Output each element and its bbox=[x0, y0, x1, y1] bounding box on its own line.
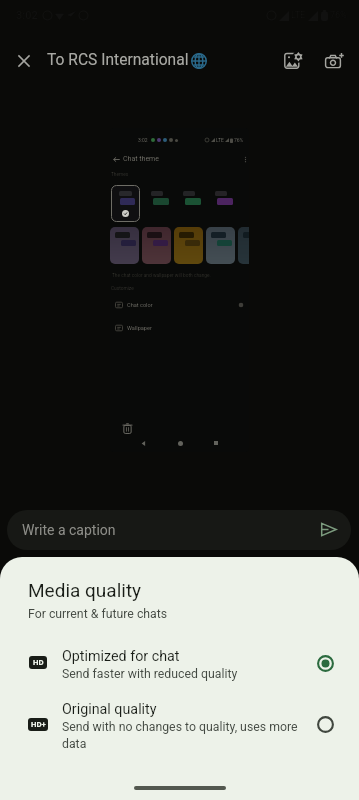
staticText: 76% bbox=[234, 137, 244, 143]
staticText: LTE bbox=[216, 137, 224, 143]
staticText: HD+ bbox=[31, 720, 46, 729]
staticText: The chat color and wallpaper will both c… bbox=[112, 273, 211, 279]
button[interactable]: HD bbox=[0, 641, 359, 688]
staticText: To RCS International bbox=[47, 51, 189, 69]
staticText: Themes bbox=[111, 172, 129, 178]
button[interactable]: Write a caption bbox=[7, 510, 351, 550]
staticText: For current & future chats bbox=[28, 607, 168, 621]
staticText: Original quality bbox=[62, 701, 157, 718]
button[interactable]: Send bbox=[309, 510, 349, 550]
staticText: Write a caption bbox=[22, 522, 116, 538]
button[interactable]: HD+ bbox=[0, 695, 359, 757]
button[interactable]: Edit image bbox=[274, 42, 312, 80]
button[interactable]: Take photo bbox=[315, 42, 353, 80]
staticText: Wallpaper bbox=[127, 325, 152, 332]
staticText: Media quality bbox=[28, 579, 142, 601]
staticText: Chat theme bbox=[123, 155, 159, 163]
staticText: Send faster with reduced quality bbox=[62, 667, 238, 681]
staticText: Send with no changes to quality, uses mo… bbox=[62, 720, 298, 751]
staticText: Customize bbox=[111, 286, 134, 292]
staticText: HD bbox=[33, 658, 44, 667]
staticText: Chat color bbox=[127, 302, 153, 309]
staticText: Optimized for chat bbox=[62, 648, 180, 665]
staticText: 3:02 bbox=[138, 137, 148, 143]
button[interactable]: Close bbox=[5, 42, 43, 80]
